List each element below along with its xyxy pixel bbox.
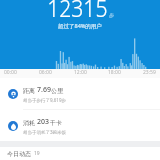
other: Distance [8,89,18,99]
staticText: 消耗 [23,119,37,127]
button[interactable]: 今日动态 [0,147,160,160]
staticText: 相当于消耗了3碗米饭 [23,129,67,135]
staticText: 千卡 [50,119,62,127]
staticText: 18:00 [108,69,121,76]
staticText: 距离 [23,87,37,95]
staticText: 步 [109,12,114,18]
staticText: 12315 [47,0,108,24]
button[interactable]: Calories [0,110,160,141]
staticText: 7.69 [37,85,51,95]
staticText: 超过了84%的用户 [58,22,102,30]
staticText: 00:00 [4,69,17,76]
staticText: 相当于步行了9,619步 [23,97,67,103]
other: Calories [8,121,18,131]
staticText: 06:00 [39,69,52,76]
staticText: 公里 [51,87,63,95]
staticText: 203 [37,117,50,127]
staticText: 23:59 [143,69,156,76]
staticText: 19 [34,150,40,157]
staticText: 12:00 [74,69,87,76]
button[interactable]: Distance [0,78,160,109]
staticText: 今日动态 [7,150,31,158]
